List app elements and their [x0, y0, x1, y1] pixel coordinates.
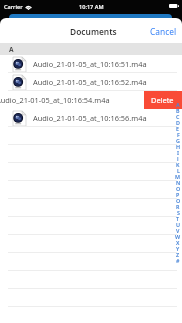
staticText: S: [177, 209, 180, 215]
staticText: Audio_21-01-05_at_10:16:54.m4a: [0, 95, 110, 105]
staticText: Audio_21-01-05_at_10:16:52.m4a: [33, 77, 147, 87]
staticText: F: [177, 131, 180, 137]
button[interactable]: Section index: [174, 101, 182, 263]
staticText: K: [176, 161, 180, 167]
staticText: H: [176, 143, 181, 149]
staticText: Audio_21-01-05_at_10:16:56.m4a: [33, 113, 147, 123]
staticText: Delete: [151, 95, 174, 105]
staticText: X: [176, 239, 180, 245]
staticText: J: [177, 155, 179, 161]
staticText: Z: [176, 251, 180, 257]
staticText: N: [176, 179, 181, 185]
staticText: Documents: [70, 26, 117, 37]
staticText: A: [176, 101, 180, 107]
staticText: #: [176, 257, 180, 263]
staticText: Carrier: [4, 3, 23, 11]
staticText: C: [176, 113, 180, 119]
staticText: I: [177, 149, 179, 155]
staticText: B: [176, 107, 180, 113]
staticText: D: [176, 119, 180, 125]
staticText: Cancel: [150, 26, 177, 37]
staticText: Y: [176, 245, 180, 251]
button[interactable]: Delete: [144, 91, 182, 109]
staticText: E: [176, 125, 180, 131]
button[interactable]: Audio_21-01-05_at_10:16:56.m4a: [0, 109, 182, 127]
staticText: T: [176, 215, 180, 221]
staticText: G: [176, 137, 180, 143]
staticText: 10:17 AM: [79, 3, 104, 11]
staticText: P: [176, 191, 180, 197]
button[interactable]: Cancel: [142, 22, 182, 41]
button[interactable]: Audio_21-01-05_at_10:16:51.m4a: [0, 55, 182, 73]
staticText: V: [176, 227, 180, 233]
button[interactable]: Audio_21-01-05_at_10:16:52.m4a: [0, 73, 182, 91]
staticText: R: [176, 203, 180, 209]
staticText: U: [176, 221, 181, 227]
staticText: A: [9, 45, 14, 54]
staticText: O: [176, 185, 181, 191]
staticText: W: [175, 233, 181, 239]
staticText: Q: [176, 197, 181, 203]
staticText: Audio_21-01-05_at_10:16:51.m4a: [33, 59, 147, 69]
staticText: L: [177, 167, 180, 173]
staticText: M: [175, 173, 181, 179]
